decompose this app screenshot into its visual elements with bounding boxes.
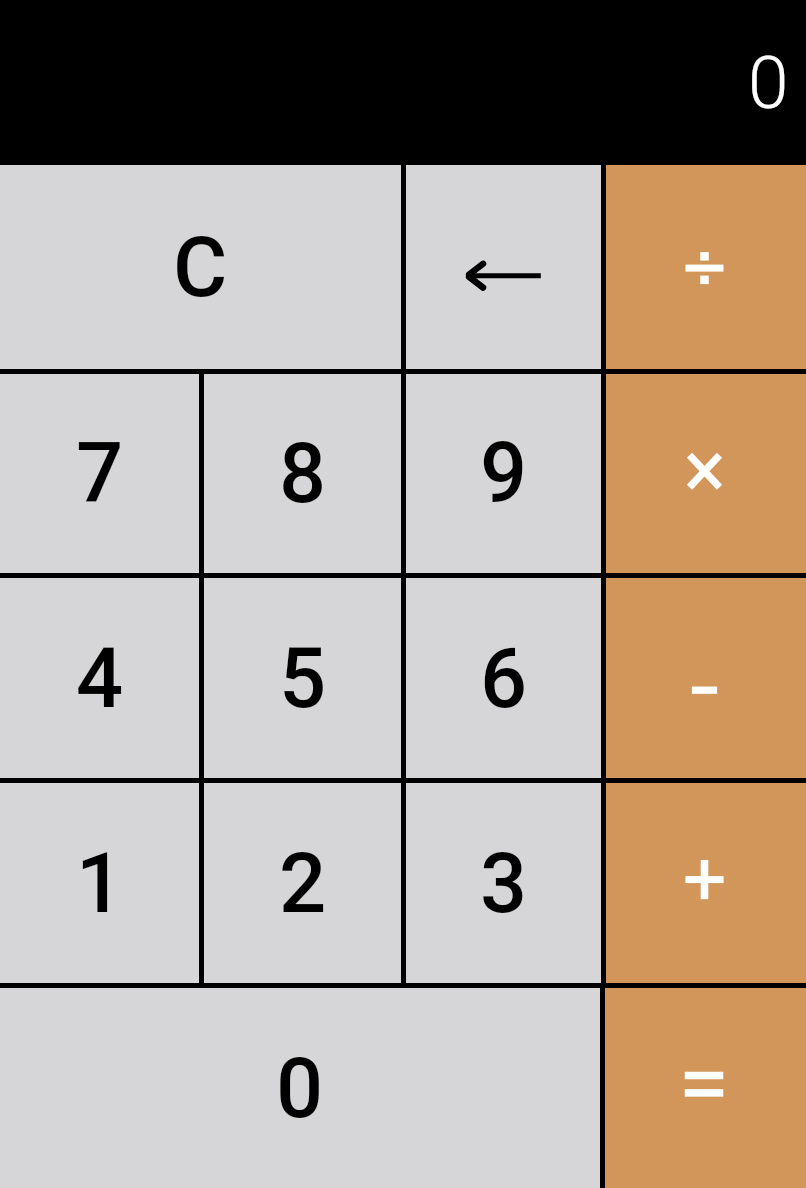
button[interactable]: 8 [204,374,401,573]
staticText: 0 [748,40,789,126]
button[interactable]: 0 [0,988,600,1188]
button[interactable]: 4 [0,578,199,778]
staticText: 2 [279,835,327,932]
staticText: 3 [480,835,528,932]
button[interactable]: 3 [406,783,601,983]
button[interactable]: 7 [0,374,199,573]
staticText: 7 [76,425,124,522]
staticText: 0 [276,1040,324,1137]
staticText: 5 [279,630,327,727]
button[interactable] [606,783,806,983]
staticText: 1 [76,835,124,932]
staticText: 4 [76,630,124,727]
button[interactable]: 5 [204,578,401,778]
button[interactable] [606,374,806,573]
button[interactable]: C [0,165,401,369]
button[interactable]: 1 [0,783,199,983]
button[interactable]: 9 [406,374,601,573]
button[interactable] [605,988,806,1188]
button[interactable] [606,578,806,778]
staticText: 9 [480,425,528,522]
staticText: C [173,219,228,316]
staticText: 6 [480,630,528,727]
button[interactable]: 6 [406,578,601,778]
staticText: 8 [279,425,327,522]
button[interactable]: 2 [204,783,401,983]
button[interactable] [406,165,601,369]
button[interactable] [606,165,806,369]
